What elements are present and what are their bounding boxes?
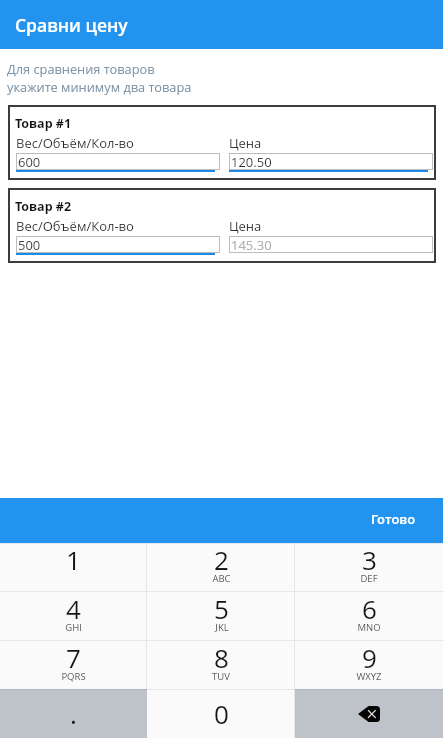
- button[interactable]: 0: [147, 689, 295, 738]
- staticText: 4: [66, 591, 81, 626]
- staticText: 8: [214, 640, 229, 675]
- button[interactable]: 4: [0, 591, 147, 640]
- staticText: ABC: [212, 572, 231, 585]
- staticText: 0: [214, 696, 229, 731]
- staticText: 120.50: [231, 153, 272, 170]
- staticText: 3: [362, 542, 377, 577]
- button[interactable]: 9: [295, 640, 443, 689]
- button[interactable]: 1: [0, 543, 147, 591]
- staticText: 600: [18, 153, 41, 170]
- staticText: Товар #1: [15, 115, 72, 132]
- staticText: 145.30: [231, 236, 272, 253]
- staticText: Цена: [229, 134, 262, 152]
- staticText: WXYZ: [356, 670, 382, 683]
- staticText: GHI: [65, 621, 82, 634]
- staticText: PQRS: [61, 670, 86, 683]
- button[interactable]: Товар #2: [8, 188, 436, 263]
- staticText: 7: [66, 640, 81, 675]
- button[interactable]: 7: [0, 640, 147, 689]
- staticText: MNO: [357, 621, 381, 634]
- staticText: Товар #2: [15, 198, 72, 215]
- staticText: JKL: [215, 621, 229, 634]
- button[interactable]: 500: [16, 236, 220, 253]
- button[interactable]: 8: [147, 640, 295, 689]
- staticText: Готово: [371, 510, 416, 528]
- button[interactable]: 120.50: [229, 153, 433, 170]
- button[interactable]: .: [0, 689, 147, 738]
- staticText: Для сравнения товаров укажите минимум дв…: [7, 60, 192, 96]
- staticText: 5: [214, 591, 229, 626]
- staticText: Сравни цену: [15, 13, 128, 37]
- button[interactable]: 3: [295, 543, 443, 591]
- button[interactable]: 2: [147, 543, 295, 591]
- button[interactable]: Готово: [357, 502, 443, 540]
- button[interactable]: Товар #1: [8, 105, 436, 180]
- staticText: TUV: [212, 670, 230, 683]
- button[interactable]: 145.30: [229, 236, 433, 253]
- staticText: .: [70, 696, 77, 731]
- button[interactable]: 600: [16, 153, 220, 170]
- staticText: DEF: [360, 572, 378, 585]
- button[interactable]: 5: [147, 591, 295, 640]
- button[interactable]: Сравни цену: [0, 0, 443, 49]
- staticText: 6: [362, 591, 377, 626]
- staticText: Цена: [229, 217, 262, 235]
- staticText: Вес/Объём/Кол-во: [16, 217, 134, 235]
- staticText: 1: [66, 542, 81, 577]
- staticText: 2: [214, 542, 229, 577]
- button[interactable]: 6: [295, 591, 443, 640]
- staticText: 500: [18, 236, 41, 253]
- button[interactable]: Backspace: [295, 689, 443, 738]
- staticText: Вес/Объём/Кол-во: [16, 134, 134, 152]
- staticText: 9: [362, 640, 377, 675]
